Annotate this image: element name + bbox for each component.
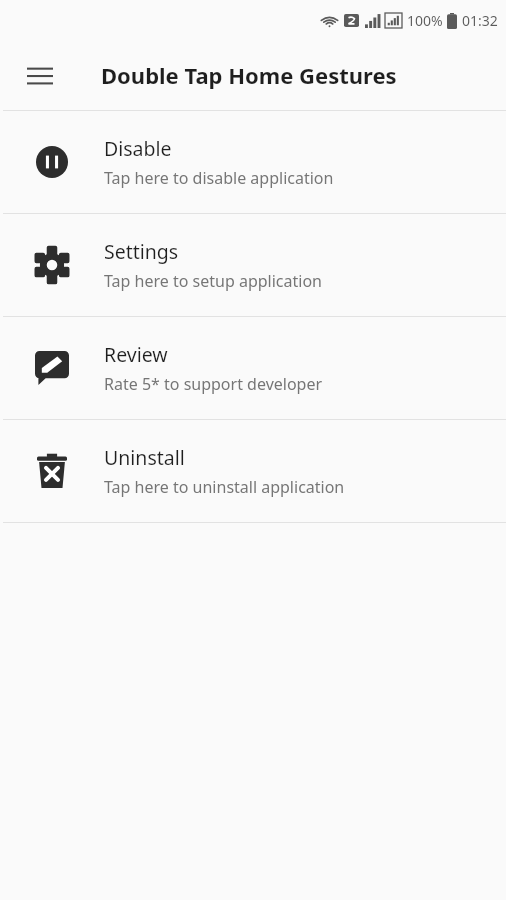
staticText: Rate 5* to support developer: [104, 373, 323, 395]
button[interactable]: Disable: [0, 111, 506, 213]
staticText: Uninstall: [104, 444, 185, 471]
staticText: Tap here to disable application: [104, 167, 334, 189]
button[interactable]: Review: [0, 317, 506, 419]
staticText: Settings: [104, 238, 179, 265]
staticText: Double Tap Home Gestures: [101, 60, 397, 90]
staticText: Tap here to uninstall application: [104, 476, 345, 498]
staticText: Tap here to setup application: [104, 270, 322, 292]
button[interactable]: Menu: [14, 49, 66, 101]
staticText: Disable: [104, 135, 172, 162]
button[interactable]: Uninstall: [0, 420, 506, 522]
button[interactable]: Settings: [0, 214, 506, 316]
staticText: 100%: [407, 11, 443, 30]
staticText: Review: [104, 341, 168, 368]
staticText: 01:32: [462, 11, 498, 30]
